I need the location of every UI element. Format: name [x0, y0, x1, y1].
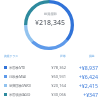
staticText: 評価	[60, 54, 66, 58]
staticText: 損益	[89, 54, 95, 58]
staticText: 総資産額	[44, 12, 57, 16]
staticText: ¥60,931	[49, 74, 66, 79]
staticText: 米国株(VTI)	[9, 65, 25, 70]
staticText: 資産クラス	[4, 54, 19, 58]
button[interactable]: 新興国株(VWO)	[0, 81, 100, 90]
staticText: ¥78,362	[49, 65, 66, 70]
staticText: +¥6,424	[77, 73, 98, 80]
button[interactable]: 米国債券(AGG)	[0, 90, 100, 99]
staticText: ¥30,066	[49, 92, 66, 97]
staticText: ¥20,164	[49, 83, 66, 88]
staticText: +¥2,415	[77, 82, 98, 89]
staticText: 米国債券(AGG)	[9, 92, 31, 97]
staticText: 日欧株(VEA)	[9, 74, 26, 79]
staticText: +¥347	[77, 91, 98, 98]
button[interactable]: 米国株(VTI)	[0, 63, 100, 72]
staticText: 新興国株(VWO)	[9, 83, 31, 88]
button[interactable]: 日欧株(VEA)	[0, 72, 100, 81]
staticText: ¥218,345	[35, 18, 65, 28]
staticText: +¥8,937	[77, 64, 98, 71]
